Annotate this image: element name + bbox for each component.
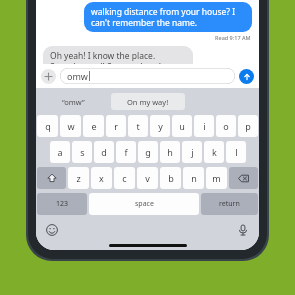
staticText: m bbox=[212, 172, 221, 184]
staticText: q bbox=[45, 120, 51, 132]
button[interactable]: n bbox=[183, 167, 204, 189]
button[interactable]: h bbox=[160, 141, 180, 163]
button[interactable]: c bbox=[114, 167, 135, 189]
staticText: return bbox=[219, 199, 240, 209]
staticText: space bbox=[135, 199, 154, 209]
button[interactable]: q bbox=[37, 115, 58, 137]
button[interactable]: t bbox=[128, 115, 148, 137]
staticText: v bbox=[145, 172, 150, 184]
staticText: o bbox=[223, 120, 229, 132]
staticText: “omw” bbox=[62, 97, 85, 107]
staticText: c bbox=[122, 172, 127, 184]
staticText: 123 bbox=[56, 199, 69, 209]
button[interactable]: f bbox=[116, 141, 136, 163]
staticText: b bbox=[168, 172, 174, 184]
button[interactable]: j bbox=[182, 141, 202, 163]
button[interactable]: x bbox=[91, 167, 112, 189]
button[interactable]: i bbox=[194, 115, 214, 137]
button[interactable]: s bbox=[72, 141, 92, 163]
button[interactable]: k bbox=[204, 141, 224, 163]
staticText: walking distance from your house? I can'… bbox=[91, 6, 245, 28]
button[interactable]: Shift bbox=[37, 167, 66, 189]
button[interactable]: Oh yeah! I know the place. Sounds good! … bbox=[43, 46, 193, 76]
button[interactable]: m bbox=[206, 167, 227, 189]
button[interactable]: a bbox=[50, 141, 70, 163]
button[interactable]: “omw” bbox=[36, 88, 111, 115]
staticText: x bbox=[99, 172, 104, 184]
button[interactable]: return bbox=[201, 193, 258, 215]
button[interactable]: On my way! bbox=[111, 93, 185, 110]
staticText: u bbox=[179, 120, 185, 132]
button[interactable]: Dictation bbox=[235, 222, 251, 238]
staticText: p bbox=[245, 120, 251, 132]
staticText: a bbox=[57, 146, 63, 158]
button[interactable]: d bbox=[94, 141, 114, 163]
button[interactable]: Emoji bbox=[44, 222, 60, 238]
staticText: On my way! bbox=[127, 97, 169, 107]
staticText: h bbox=[167, 146, 173, 158]
button[interactable]: Backspace bbox=[229, 167, 258, 189]
button[interactable]: w bbox=[60, 115, 81, 137]
staticText: l bbox=[235, 146, 238, 158]
button[interactable]: l bbox=[226, 141, 246, 163]
button[interactable]: Add attachment bbox=[41, 69, 56, 84]
staticText: e bbox=[91, 120, 97, 132]
staticText: k bbox=[212, 146, 217, 158]
staticText: omw bbox=[67, 70, 88, 82]
staticText: z bbox=[76, 172, 81, 184]
button[interactable]: p bbox=[238, 115, 258, 137]
staticText: f bbox=[124, 146, 128, 158]
staticText: i bbox=[203, 120, 206, 132]
button[interactable]: z bbox=[68, 167, 89, 189]
button[interactable]: o bbox=[216, 115, 236, 137]
button[interactable]: omw bbox=[60, 68, 235, 84]
staticText: w bbox=[67, 120, 75, 132]
staticText: Read 9:17 AM bbox=[215, 34, 251, 41]
button[interactable]: u bbox=[172, 115, 192, 137]
button[interactable]: y bbox=[150, 115, 170, 137]
staticText: g bbox=[145, 146, 151, 158]
button[interactable]: e bbox=[83, 115, 104, 137]
staticText: t bbox=[136, 120, 140, 132]
button[interactable]: g bbox=[138, 141, 158, 163]
button[interactable]: Send bbox=[239, 69, 254, 84]
staticText: y bbox=[158, 120, 163, 132]
staticText: j bbox=[191, 146, 194, 158]
button[interactable]: r bbox=[106, 115, 126, 137]
staticText: d bbox=[101, 146, 107, 158]
button[interactable]: space bbox=[89, 193, 199, 215]
staticText: n bbox=[191, 172, 197, 184]
staticText: s bbox=[80, 146, 85, 158]
staticText: r bbox=[114, 120, 118, 132]
button[interactable]: 123 bbox=[37, 193, 87, 215]
button[interactable]: b bbox=[160, 167, 181, 189]
button[interactable]: walking distance from your house? I can'… bbox=[84, 2, 252, 32]
button[interactable]: v bbox=[137, 167, 158, 189]
staticText: Oh yeah! I know the place. Sounds good! … bbox=[50, 50, 186, 72]
